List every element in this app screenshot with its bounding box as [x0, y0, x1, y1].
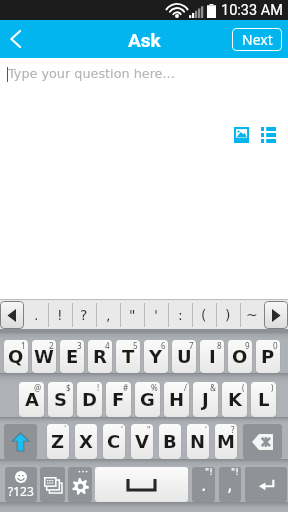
- button[interactable]: L: [251, 382, 276, 417]
- button[interactable]: A: [19, 382, 44, 417]
- staticText: L: [258, 389, 270, 410]
- button[interactable]: Previous suggestions: [0, 301, 24, 329]
- button[interactable]: ,: [96, 299, 120, 331]
- staticText: A: [25, 389, 39, 410]
- staticText: 6: [161, 340, 166, 351]
- button[interactable]: V: [131, 424, 153, 459]
- staticText: P: [261, 346, 275, 367]
- staticText: D: [82, 389, 97, 410]
- button[interactable]: Attach image: [229, 123, 253, 147]
- button[interactable]: ": [120, 299, 144, 331]
- button[interactable]: G: [135, 382, 160, 417]
- button[interactable]: More suggestions: [264, 301, 288, 329]
- staticText: ?123: [8, 483, 34, 499]
- staticText: ~: [246, 307, 258, 323]
- button[interactable]: .: [24, 299, 48, 331]
- staticText: ): [225, 307, 231, 323]
- button[interactable]: Symbols and emoji: [5, 467, 37, 502]
- button[interactable]: ': [144, 299, 168, 331]
- staticText: 8: [217, 340, 222, 351]
- button[interactable]: D: [77, 382, 102, 417]
- button[interactable]: ,: [219, 467, 241, 502]
- staticText: J: [202, 389, 209, 410]
- button[interactable]: :: [168, 299, 192, 331]
- staticText: O: [232, 346, 248, 367]
- button[interactable]: F: [106, 382, 131, 417]
- button[interactable]: Enter: [245, 467, 287, 502]
- button[interactable]: Switch keyboard: [40, 467, 65, 502]
- button[interactable]: ~: [240, 299, 264, 331]
- staticText: "!: [231, 467, 239, 477]
- button[interactable]: Next: [232, 28, 282, 51]
- staticText: ": [129, 307, 136, 323]
- button[interactable]: Z: [47, 424, 69, 459]
- staticText: ?: [80, 307, 88, 323]
- staticText: 3: [77, 340, 82, 351]
- staticText: ': [121, 424, 123, 435]
- button[interactable]: O: [228, 340, 252, 373]
- staticText: 9: [245, 340, 250, 351]
- button[interactable]: N: [187, 424, 209, 459]
- button[interactable]: List: [256, 123, 280, 147]
- button[interactable]: ?: [72, 299, 96, 331]
- staticText: W: [34, 346, 54, 367]
- button[interactable]: J: [193, 382, 218, 417]
- staticText: Next: [242, 30, 273, 49]
- staticText: N: [190, 431, 206, 452]
- staticText: #: [123, 382, 129, 393]
- staticText: `: [64, 424, 67, 435]
- staticText: R: [93, 346, 107, 367]
- button[interactable]: Backspace: [243, 424, 282, 459]
- button[interactable]: Y: [144, 340, 168, 373]
- button[interactable]: M: [215, 424, 237, 459]
- staticText: ': [205, 424, 207, 435]
- button[interactable]: X: [75, 424, 97, 459]
- staticText: !: [97, 382, 100, 393]
- staticText: Y: [149, 346, 163, 367]
- staticText: I: [209, 346, 216, 367]
- button[interactable]: K: [222, 382, 247, 417]
- button[interactable]: (: [192, 299, 216, 331]
- staticText: ,: [106, 307, 111, 323]
- button[interactable]: P: [256, 340, 280, 373]
- button[interactable]: Q: [4, 340, 28, 373]
- staticText: E: [66, 346, 79, 367]
- staticText: T: [122, 346, 135, 367]
- button[interactable]: B: [159, 424, 181, 459]
- button[interactable]: ): [216, 299, 240, 331]
- button[interactable]: H: [164, 382, 189, 417]
- staticText: Ask: [128, 29, 161, 51]
- staticText: 10:33 AM: [221, 2, 283, 19]
- staticText: &: [210, 382, 216, 393]
- button[interactable]: Back: [0, 20, 31, 58]
- staticText: M: [217, 431, 235, 452]
- button[interactable]: .: [192, 467, 215, 502]
- button[interactable]: R: [88, 340, 112, 373]
- staticText: K: [228, 389, 242, 410]
- staticText: 1: [21, 340, 26, 351]
- staticText: %: [151, 382, 158, 393]
- button[interactable]: Space: [95, 467, 188, 502]
- button[interactable]: Settings: [68, 467, 92, 502]
- staticText: (: [201, 307, 207, 323]
- button[interactable]: E: [60, 340, 84, 373]
- staticText: /: [184, 382, 187, 393]
- staticText: ): [271, 382, 274, 393]
- staticText: S: [54, 389, 67, 410]
- staticText: Type your question here...: [8, 66, 175, 81]
- button[interactable]: Shift: [4, 424, 37, 459]
- button[interactable]: T: [116, 340, 140, 373]
- button[interactable]: !: [48, 299, 72, 331]
- staticText: C: [107, 431, 121, 452]
- button[interactable]: I: [200, 340, 224, 373]
- staticText: $: [66, 382, 71, 393]
- button[interactable]: C: [103, 424, 125, 459]
- staticText: 4: [105, 340, 110, 351]
- staticText: G: [140, 389, 155, 410]
- staticText: ": [147, 424, 151, 435]
- staticText: B: [163, 431, 177, 452]
- staticText: "!: [205, 467, 213, 477]
- button[interactable]: W: [32, 340, 56, 373]
- button[interactable]: U: [172, 340, 196, 373]
- button[interactable]: S: [48, 382, 73, 417]
